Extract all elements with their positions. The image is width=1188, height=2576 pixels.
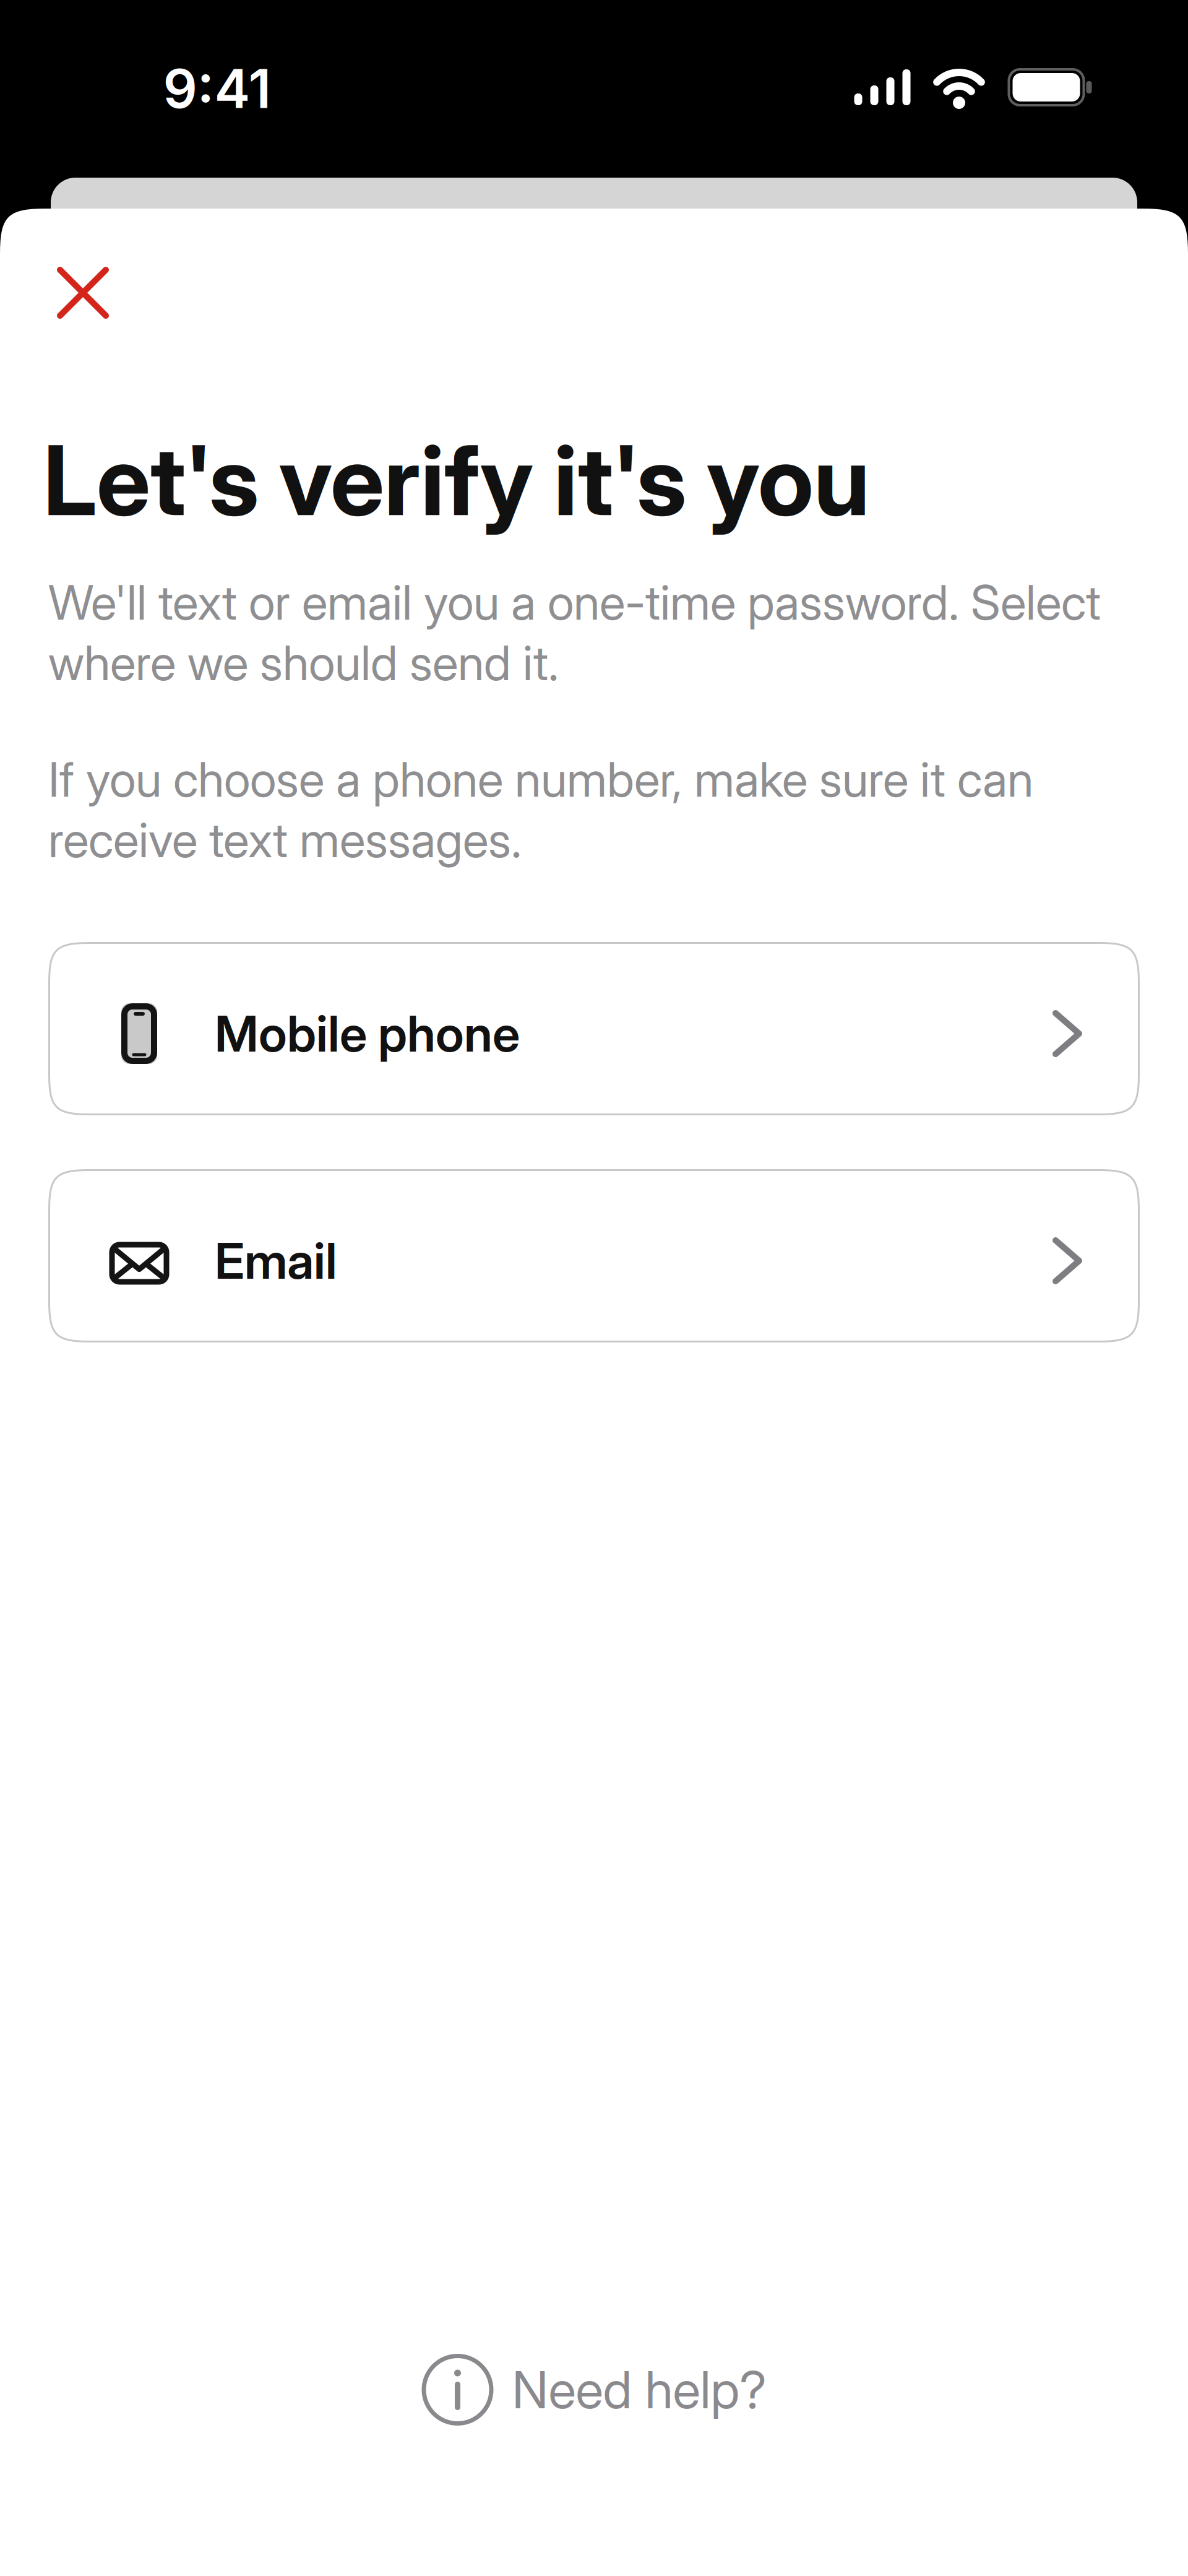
- button[interactable]: Mobile phone: [48, 942, 1140, 1115]
- button[interactable]: [57, 267, 109, 319]
- button[interactable]: Email: [48, 1169, 1140, 1342]
- staticText: If you choose a phone number, make sure …: [48, 750, 1033, 869]
- staticText: Let's verify it's you: [43, 422, 870, 538]
- staticText: Mobile phone: [215, 1004, 520, 1064]
- staticText: 9:41: [163, 56, 271, 121]
- staticText: We'll text or email you a one-time passw…: [48, 573, 1101, 692]
- button[interactable]: Need help?: [422, 2354, 766, 2426]
- staticText: Need help?: [512, 2359, 766, 2421]
- staticText: Email: [215, 1231, 337, 1291]
